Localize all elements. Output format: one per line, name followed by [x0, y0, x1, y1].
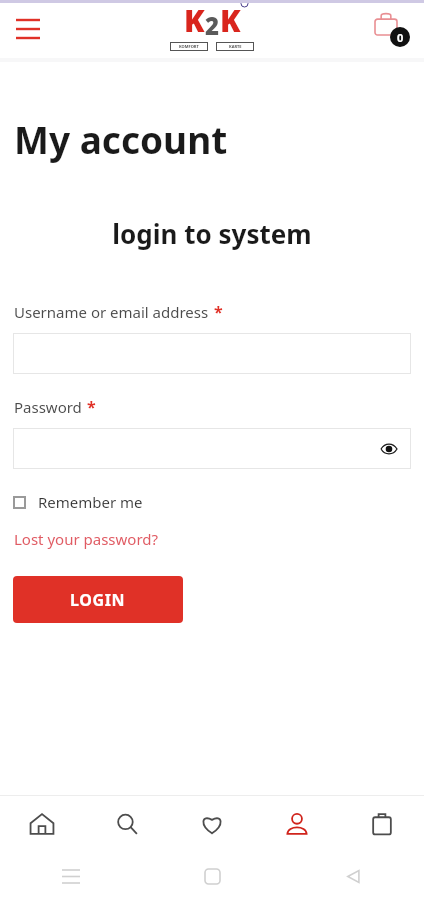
staticText: Lost your password?: [14, 529, 159, 549]
button[interactable]: Remember me: [13, 492, 143, 512]
staticText: K: [184, 0, 205, 41]
staticText: My account: [14, 114, 228, 164]
staticText: KARTE: [229, 44, 242, 49]
button[interactable]: Cart, 0 items: [368, 5, 416, 53]
button[interactable]: Home: [0, 796, 84, 852]
staticText: K: [220, 0, 241, 41]
button[interactable]: Show password: [377, 437, 401, 461]
button[interactable]: Cart: [339, 796, 424, 852]
staticText: login to system: [0, 216, 424, 251]
staticText: *: [87, 396, 96, 418]
button[interactable]: Show password: [13, 428, 411, 469]
staticText: Password: [14, 397, 82, 417]
staticText: Username or email address: [14, 302, 209, 322]
button[interactable]: [13, 333, 411, 374]
button[interactable]: Search: [84, 796, 169, 852]
button[interactable]: LOGIN: [13, 576, 183, 623]
staticText: 2: [205, 9, 220, 42]
staticText: Remember me: [38, 492, 143, 512]
staticText: *: [214, 301, 223, 323]
button[interactable]: Menu: [6, 7, 50, 51]
button[interactable]: Lost your password?: [14, 529, 159, 549]
staticText: KOMFORT: [179, 44, 199, 49]
staticText: 0: [397, 30, 404, 45]
button[interactable]: K2K home: [170, 0, 254, 51]
staticText: LOGIN: [70, 589, 126, 611]
button[interactable]: Wishlist: [169, 796, 254, 852]
button[interactable]: Home: [142, 852, 283, 900]
button[interactable]: Recents: [0, 852, 142, 900]
button[interactable]: Account: [254, 796, 339, 852]
button[interactable]: Back: [283, 852, 424, 900]
